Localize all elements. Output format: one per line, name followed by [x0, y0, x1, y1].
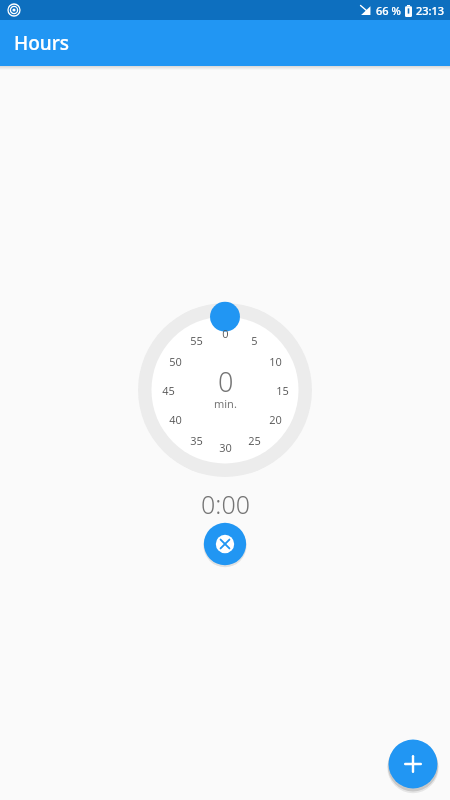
staticText: 20 [269, 412, 282, 427]
staticText: 15 [276, 383, 289, 398]
staticText: 0 [222, 326, 229, 341]
staticText: 0:00 [201, 487, 250, 521]
button[interactable]: Hours [0, 20, 450, 66]
button[interactable]: Cancel timer [202, 521, 248, 567]
staticText: 0 [218, 363, 234, 400]
staticText: 25 [248, 433, 261, 448]
staticText: 45 [162, 383, 175, 398]
button[interactable]: 0 [138, 303, 312, 477]
staticText: 5 [251, 333, 258, 348]
staticText: 35 [190, 433, 203, 448]
staticText: 50 [169, 354, 182, 369]
staticText: min. [214, 396, 237, 411]
staticText: 23:13 [416, 3, 445, 18]
staticText: 55 [190, 333, 203, 348]
staticText: 40 [169, 412, 182, 427]
staticText: 10 [269, 354, 282, 369]
staticText: 66 % [376, 3, 401, 18]
button[interactable]: Add [387, 738, 439, 790]
staticText: 30 [219, 440, 232, 455]
staticText: Hours [14, 30, 70, 56]
